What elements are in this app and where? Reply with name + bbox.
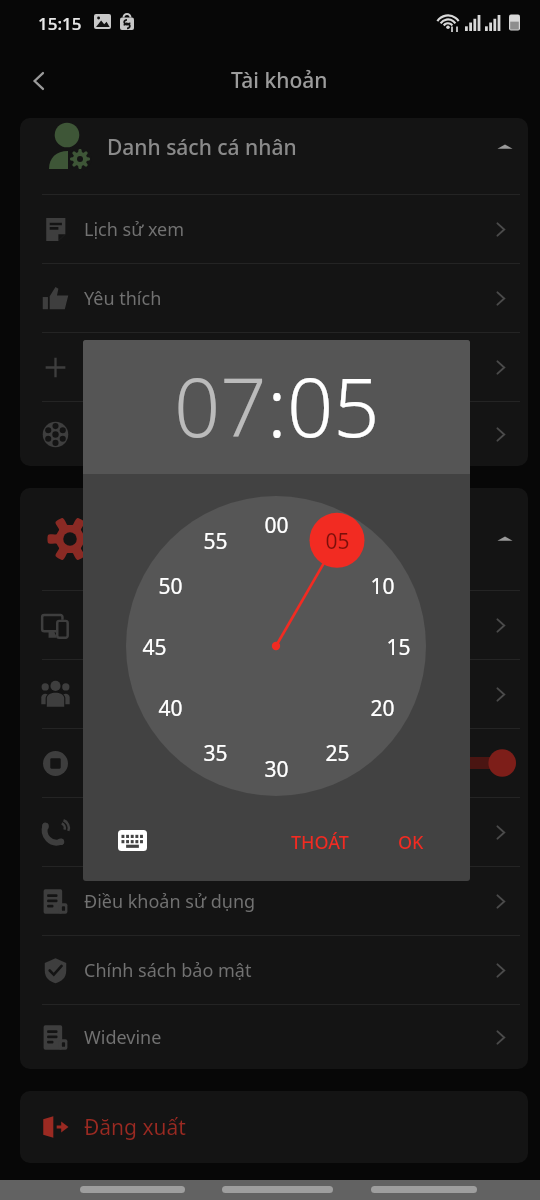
staticText: Hỗ trợ [84, 820, 138, 845]
staticText: 15:15 [38, 12, 82, 35]
staticText: Widevine [84, 1025, 162, 1050]
button[interactable]: 55 [193, 527, 237, 553]
button[interactable]: OK [384, 822, 438, 863]
button[interactable]: Back [16, 58, 62, 104]
button[interactable]: Quản lý thiết bị [20, 591, 528, 659]
staticText: 10 [370, 572, 395, 598]
button[interactable]: Chất lượng [20, 729, 528, 797]
button[interactable]: Hỗ trợ [20, 798, 528, 866]
button[interactable]: 40 [148, 694, 192, 720]
button[interactable]: 25 [315, 739, 359, 765]
button[interactable]: 15 [376, 633, 420, 659]
button[interactable]: Home [222, 1186, 333, 1193]
staticText: Tài khoản [231, 66, 328, 95]
button[interactable]: 20 [360, 694, 404, 720]
button[interactable]: Widevine [20, 1005, 528, 1069]
staticText: OK [398, 830, 424, 855]
staticText: 45 [142, 633, 167, 659]
button[interactable]: Lịch sử xem [20, 195, 528, 263]
button[interactable]: Back [371, 1186, 477, 1193]
staticText: Đăng xuất [84, 1113, 186, 1142]
button[interactable]: Chính sách bảo mật [20, 936, 528, 1004]
staticText: 50 [158, 572, 183, 598]
button[interactable]: 05 [287, 350, 380, 460]
staticText: 00 [264, 511, 289, 537]
button[interactable]: Switch to keyboard input [110, 822, 154, 858]
button[interactable]: 45 [132, 633, 176, 659]
button[interactable]: Danh sách cá nhân [20, 118, 528, 194]
staticText: 05 [325, 527, 350, 553]
button[interactable]: Hồ sơ [20, 660, 528, 728]
button[interactable]: Yêu thích [20, 264, 528, 332]
button[interactable]: Recent apps [80, 1186, 185, 1193]
button[interactable]: 35 [193, 739, 237, 765]
button[interactable]: Điều khoản sử dụng [20, 867, 528, 935]
staticText: 55 [203, 527, 228, 553]
button[interactable]: 07 [174, 350, 267, 460]
staticText: 07 [174, 350, 267, 460]
staticText: THOÁT [291, 830, 349, 855]
staticText: 35 [203, 739, 228, 765]
staticText: : [267, 350, 287, 460]
button[interactable]: Toggle [460, 748, 520, 778]
staticText: Phim của tôi [84, 422, 189, 447]
staticText: Yêu thích [84, 286, 162, 311]
staticText: Danh sách phát [84, 355, 217, 380]
button[interactable]: Phim của tôi [20, 402, 528, 466]
button[interactable]: 00 [254, 511, 298, 537]
button[interactable]: 10 [360, 572, 404, 598]
staticText: 20 [370, 694, 395, 720]
staticText: Điều khoản sử dụng [84, 889, 256, 914]
button[interactable]: Cài đặt [20, 488, 528, 590]
button[interactable]: 30 [254, 755, 298, 781]
staticText: Lịch sử xem [84, 217, 185, 242]
staticText: 15 [386, 633, 411, 659]
button[interactable]: Đăng xuất [20, 1091, 528, 1163]
staticText: Quản lý thiết bị [84, 613, 213, 638]
staticText: Chính sách bảo mật [84, 958, 252, 983]
staticText: Danh sách cá nhân [107, 133, 297, 162]
button[interactable]: 05 [315, 527, 359, 553]
staticText: 25 [325, 739, 350, 765]
staticText: 30 [264, 755, 289, 781]
button[interactable]: 50 [148, 572, 192, 598]
staticText: 40 [158, 694, 183, 720]
staticText: 05 [287, 350, 380, 460]
button[interactable]: Danh sách phát [20, 333, 528, 401]
staticText: Cài đặt [107, 525, 177, 554]
button[interactable]: THOÁT [277, 822, 363, 863]
